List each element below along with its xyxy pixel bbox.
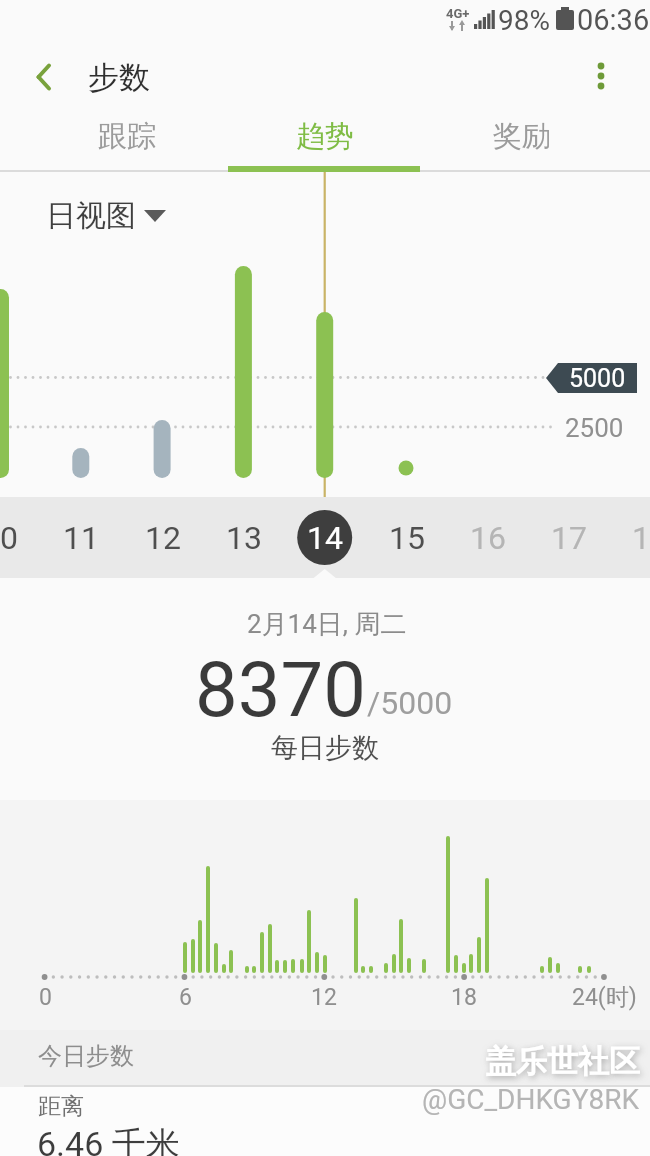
staticText: 盖乐世社区 xyxy=(485,1042,640,1081)
staticText: 今日步数 xyxy=(38,1041,134,1071)
button[interactable] xyxy=(0,1087,650,1156)
staticText: 2500 xyxy=(565,413,624,443)
button[interactable]: 17 xyxy=(528,497,609,578)
button[interactable] xyxy=(0,110,217,172)
staticText: 日视图 xyxy=(46,197,136,235)
staticText: 奖励 xyxy=(493,118,551,155)
button[interactable]: 14 xyxy=(284,497,365,578)
staticText: 98% xyxy=(498,4,550,37)
staticText: 6 xyxy=(179,984,192,1011)
staticText: 12 xyxy=(311,984,337,1011)
button[interactable] xyxy=(433,110,650,172)
staticText: 11 xyxy=(63,519,99,557)
staticText: 12 xyxy=(145,519,181,557)
staticText: 18 xyxy=(451,984,477,1011)
staticText: 5000 xyxy=(569,364,626,393)
staticText: 10 xyxy=(0,519,18,557)
button[interactable]: 15 xyxy=(366,497,447,578)
staticText: 趋势 xyxy=(296,118,354,155)
staticText: 8370 xyxy=(195,645,366,725)
staticText: 15 xyxy=(389,519,425,557)
button[interactable] xyxy=(40,192,180,240)
button[interactable]: 11 xyxy=(40,497,121,578)
staticText: 24(时) xyxy=(572,983,637,1012)
staticText: 0 xyxy=(39,984,52,1011)
staticText: 6.46 千米 xyxy=(37,1123,180,1156)
staticText: 14 xyxy=(307,519,343,557)
staticText: @GC_DHKGY8RK xyxy=(422,1083,640,1116)
staticText: 17 xyxy=(551,519,587,557)
staticText: 18 xyxy=(632,519,650,557)
staticText: 06:36 xyxy=(577,3,650,37)
staticText: 16 xyxy=(470,519,506,557)
staticText: 距离 xyxy=(38,1092,84,1121)
staticText: 4G+ xyxy=(446,6,470,21)
staticText: 2月14日, 周二 xyxy=(247,608,407,641)
button[interactable] xyxy=(578,50,626,106)
button[interactable]: 12 xyxy=(122,497,203,578)
staticText: 每日步数 xyxy=(271,731,379,765)
staticText: /5000 xyxy=(367,684,453,722)
button[interactable] xyxy=(18,52,70,104)
button[interactable]: 13 xyxy=(203,497,284,578)
staticText: 跟踪 xyxy=(98,118,156,155)
button[interactable] xyxy=(217,110,433,172)
staticText: 步数 xyxy=(88,58,150,97)
button[interactable]: 16 xyxy=(447,497,528,578)
staticText: 13 xyxy=(226,519,262,557)
